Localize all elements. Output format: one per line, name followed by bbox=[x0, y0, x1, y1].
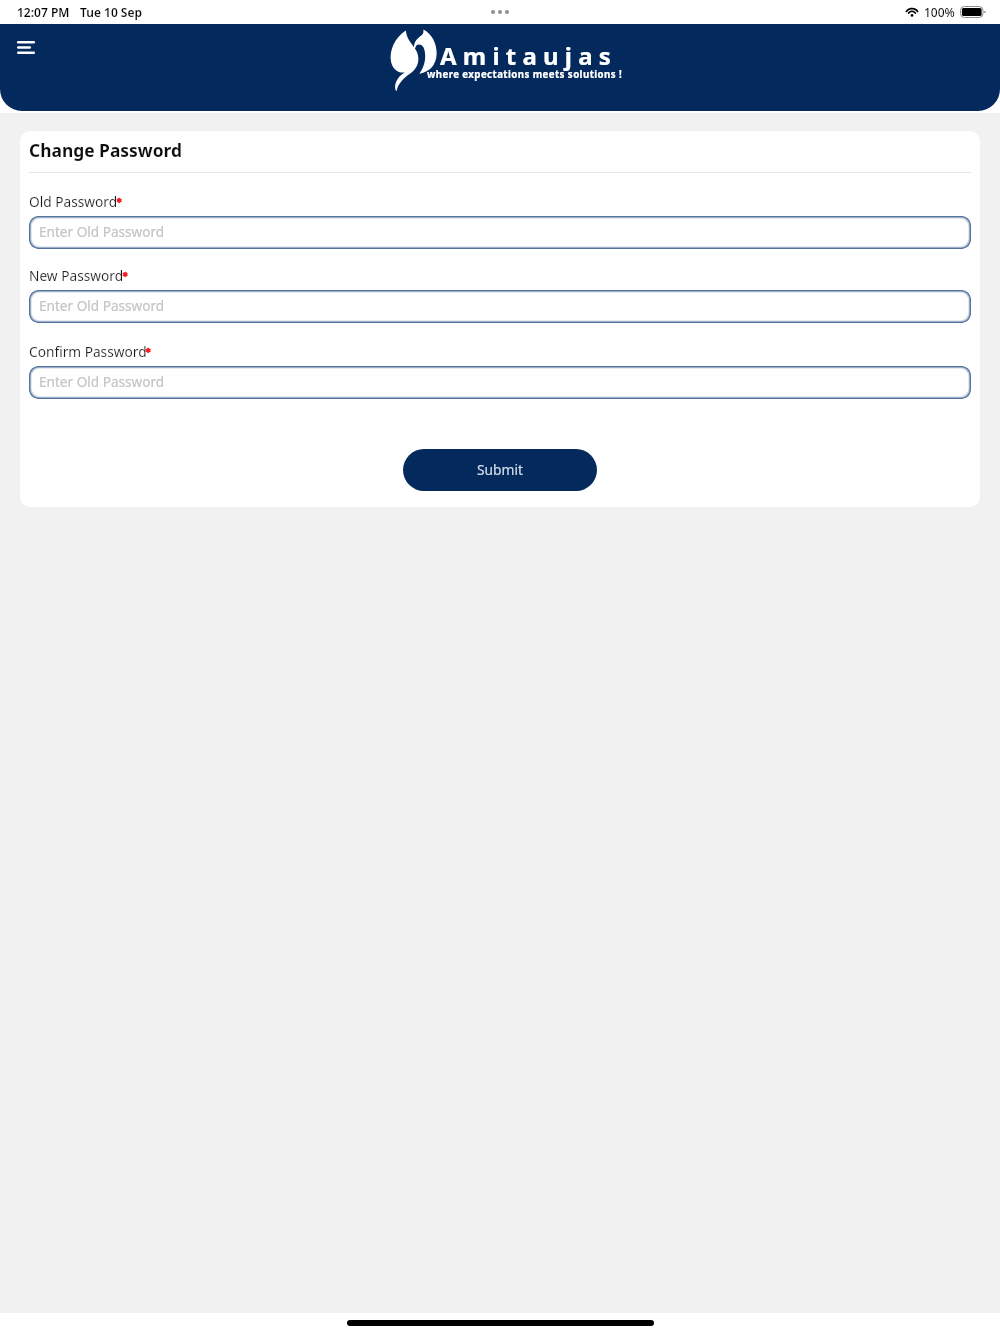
staticText: Old Password bbox=[29, 192, 118, 211]
staticText: Amitaujas bbox=[440, 39, 617, 72]
staticText: Change Password bbox=[29, 138, 182, 162]
button[interactable]: Submit bbox=[403, 449, 597, 491]
button[interactable]: Enter Old Password bbox=[29, 216, 971, 249]
staticText: Tue 10 Sep bbox=[80, 4, 143, 20]
button[interactable]: Enter Old Password bbox=[29, 290, 971, 323]
button[interactable]: Enter Old Password bbox=[29, 366, 971, 399]
staticText: Confirm Password bbox=[29, 342, 147, 361]
staticText: 100% bbox=[924, 4, 955, 20]
staticText: New Password bbox=[29, 266, 124, 285]
staticText: Submit bbox=[477, 460, 524, 479]
staticText: Enter Old Password bbox=[39, 222, 165, 241]
staticText: 12:07 PM bbox=[17, 4, 70, 20]
staticText: Enter Old Password bbox=[39, 296, 165, 315]
button[interactable]: Open navigation menu bbox=[3, 28, 48, 73]
staticText: Enter Old Password bbox=[39, 372, 165, 391]
staticText: where expectations meets solutions ! bbox=[427, 68, 623, 81]
